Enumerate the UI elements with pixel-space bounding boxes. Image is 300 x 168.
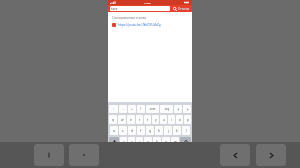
staticText: w xyxy=(121,118,124,122)
staticText: Скопированная ссылка xyxy=(112,16,146,20)
button[interactable]: h xyxy=(155,126,163,135)
button[interactable]: .org xyxy=(160,105,173,113)
button[interactable]: - xyxy=(119,105,127,113)
staticText: z xyxy=(123,140,125,144)
button[interactable]: u xyxy=(160,115,167,124)
staticText: : xyxy=(113,107,114,111)
button[interactable]: Play xyxy=(69,144,99,166)
staticText: s xyxy=(122,129,124,133)
button[interactable]: d xyxy=(128,126,136,135)
button[interactable]: Previous xyxy=(174,105,182,113)
staticText: u xyxy=(163,118,165,122)
button[interactable]: f xyxy=(137,126,145,135)
button[interactable]: a xyxy=(110,126,118,135)
staticText: / xyxy=(140,107,142,111)
staticText: p xyxy=(187,118,189,122)
button[interactable]: / xyxy=(137,105,145,113)
button[interactable]: Next xyxy=(256,144,286,166)
button[interactable]: e xyxy=(127,115,135,124)
staticText: r xyxy=(139,118,141,122)
button[interactable]: + xyxy=(128,105,136,113)
button[interactable]: v xyxy=(144,137,152,146)
button[interactable]: More options xyxy=(34,144,64,166)
button[interactable]: Отмена xyxy=(178,7,190,11)
staticText: 14:48 xyxy=(144,1,151,4)
staticText: l xyxy=(186,129,187,133)
button[interactable]: t xyxy=(144,115,151,124)
staticText: Отмена xyxy=(178,7,190,11)
staticText: j xyxy=(168,129,169,133)
staticText: i xyxy=(171,118,172,122)
button[interactable]: b xyxy=(153,137,161,146)
staticText: g xyxy=(149,129,151,133)
button[interactable]: i xyxy=(168,115,175,124)
staticText: save xyxy=(111,7,118,11)
staticText: .com xyxy=(149,107,156,111)
button[interactable]: l xyxy=(182,126,190,135)
staticText: .org xyxy=(164,107,170,111)
staticText: e xyxy=(130,118,132,122)
button[interactable]: c xyxy=(136,137,143,146)
button[interactable]: Backspace xyxy=(180,137,191,146)
staticText: t xyxy=(147,118,149,122)
staticText: n xyxy=(165,140,167,144)
staticText: a xyxy=(113,129,115,133)
staticText: + xyxy=(131,107,133,111)
staticText: c xyxy=(139,140,141,144)
staticText: - xyxy=(123,107,124,111)
button[interactable]: o xyxy=(176,115,183,124)
button[interactable]: y xyxy=(152,115,159,124)
button[interactable]: Search xyxy=(172,6,177,11)
button[interactable]: k xyxy=(173,126,181,135)
button[interactable]: w xyxy=(118,115,126,124)
button[interactable]: z xyxy=(120,137,127,146)
staticText: d xyxy=(131,129,133,133)
button[interactable]: Previous xyxy=(220,144,250,166)
staticText: https://youtu.be/-NhZ3fUVkZg xyxy=(118,23,161,27)
button[interactable]: p xyxy=(184,115,191,124)
staticText: m xyxy=(174,140,177,144)
button[interactable]: : xyxy=(109,105,118,113)
button[interactable]: n xyxy=(162,137,170,146)
staticText: v xyxy=(147,140,149,144)
staticText: y xyxy=(155,118,157,122)
staticText: f xyxy=(140,129,142,133)
staticText: k xyxy=(176,129,178,133)
staticText: x xyxy=(131,140,133,144)
button[interactable]: g xyxy=(146,126,154,135)
staticText: h xyxy=(158,129,160,133)
button[interactable]: .com xyxy=(146,105,159,113)
button[interactable]: s xyxy=(119,126,127,135)
button[interactable]: Shift xyxy=(109,137,119,146)
button[interactable]: j xyxy=(164,126,172,135)
button[interactable]: x xyxy=(128,137,135,146)
staticText: q xyxy=(112,118,114,122)
button[interactable]: m xyxy=(171,137,179,146)
button[interactable]: Next xyxy=(183,105,191,113)
button[interactable]: q xyxy=(109,115,117,124)
staticText: b xyxy=(156,140,158,144)
button[interactable]: r xyxy=(136,115,143,124)
staticText: o xyxy=(179,118,181,122)
button[interactable]: save xyxy=(110,6,170,11)
